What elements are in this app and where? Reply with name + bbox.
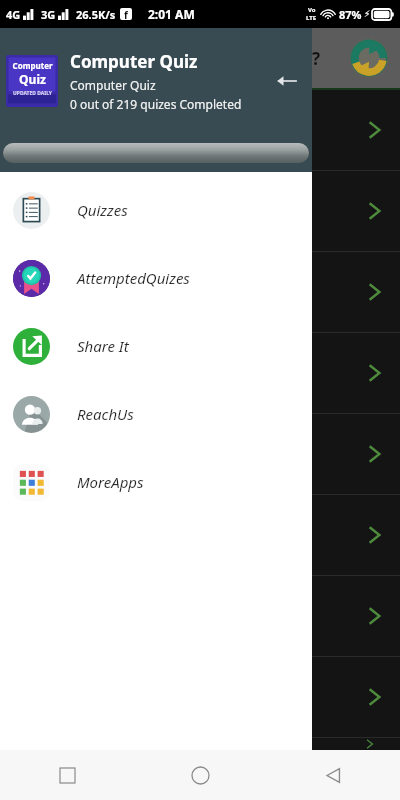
button[interactable]	[0, 90, 400, 170]
staticText: 3G	[41, 7, 56, 22]
staticText: ReachUs	[77, 404, 134, 424]
staticText: AttemptedQuizes	[77, 268, 190, 288]
staticText: Share It	[77, 336, 129, 356]
staticText: Quiz	[19, 71, 46, 87]
button[interactable]: Quizzes	[0, 176, 312, 244]
staticText: f	[124, 8, 128, 20]
staticText: Quizzes	[77, 200, 128, 220]
button[interactable]	[0, 171, 400, 251]
button[interactable]: Progress	[3, 143, 309, 163]
staticText: Computer Quiz	[70, 77, 156, 93]
button[interactable]	[0, 414, 400, 494]
staticText: 26.5K/s	[76, 7, 116, 22]
staticText: 2:01 AM	[148, 6, 195, 22]
staticText: 87%	[339, 7, 362, 22]
button[interactable]	[0, 738, 400, 750]
button[interactable]	[0, 333, 400, 413]
staticText: Computer Quiz	[70, 50, 198, 73]
button[interactable]: Recent apps	[0, 750, 134, 800]
staticText: MoreApps	[77, 472, 144, 492]
staticText: 0 out of 219 quizes Completed	[70, 96, 242, 112]
staticText: ?	[312, 47, 321, 70]
staticText: 4G	[6, 7, 21, 22]
staticText: Vo	[308, 6, 316, 14]
staticText: ⚡	[364, 9, 371, 19]
button[interactable]	[0, 495, 400, 575]
other: App logo	[350, 39, 388, 77]
button[interactable]: AttemptedQuizes	[0, 244, 312, 312]
button[interactable]: Back	[267, 750, 400, 800]
button[interactable]	[0, 657, 400, 737]
button[interactable]	[0, 252, 400, 332]
staticText: Computer	[12, 60, 53, 71]
button[interactable]: Back	[270, 64, 304, 98]
staticText: LTE	[306, 14, 317, 22]
button[interactable]: MoreApps	[0, 448, 312, 516]
button[interactable]: Home	[134, 750, 267, 800]
button[interactable]	[0, 576, 400, 656]
button[interactable]: ReachUs	[0, 380, 312, 448]
staticText: UPDATED DAILY	[13, 90, 52, 97]
button[interactable]: Share It	[0, 312, 312, 380]
